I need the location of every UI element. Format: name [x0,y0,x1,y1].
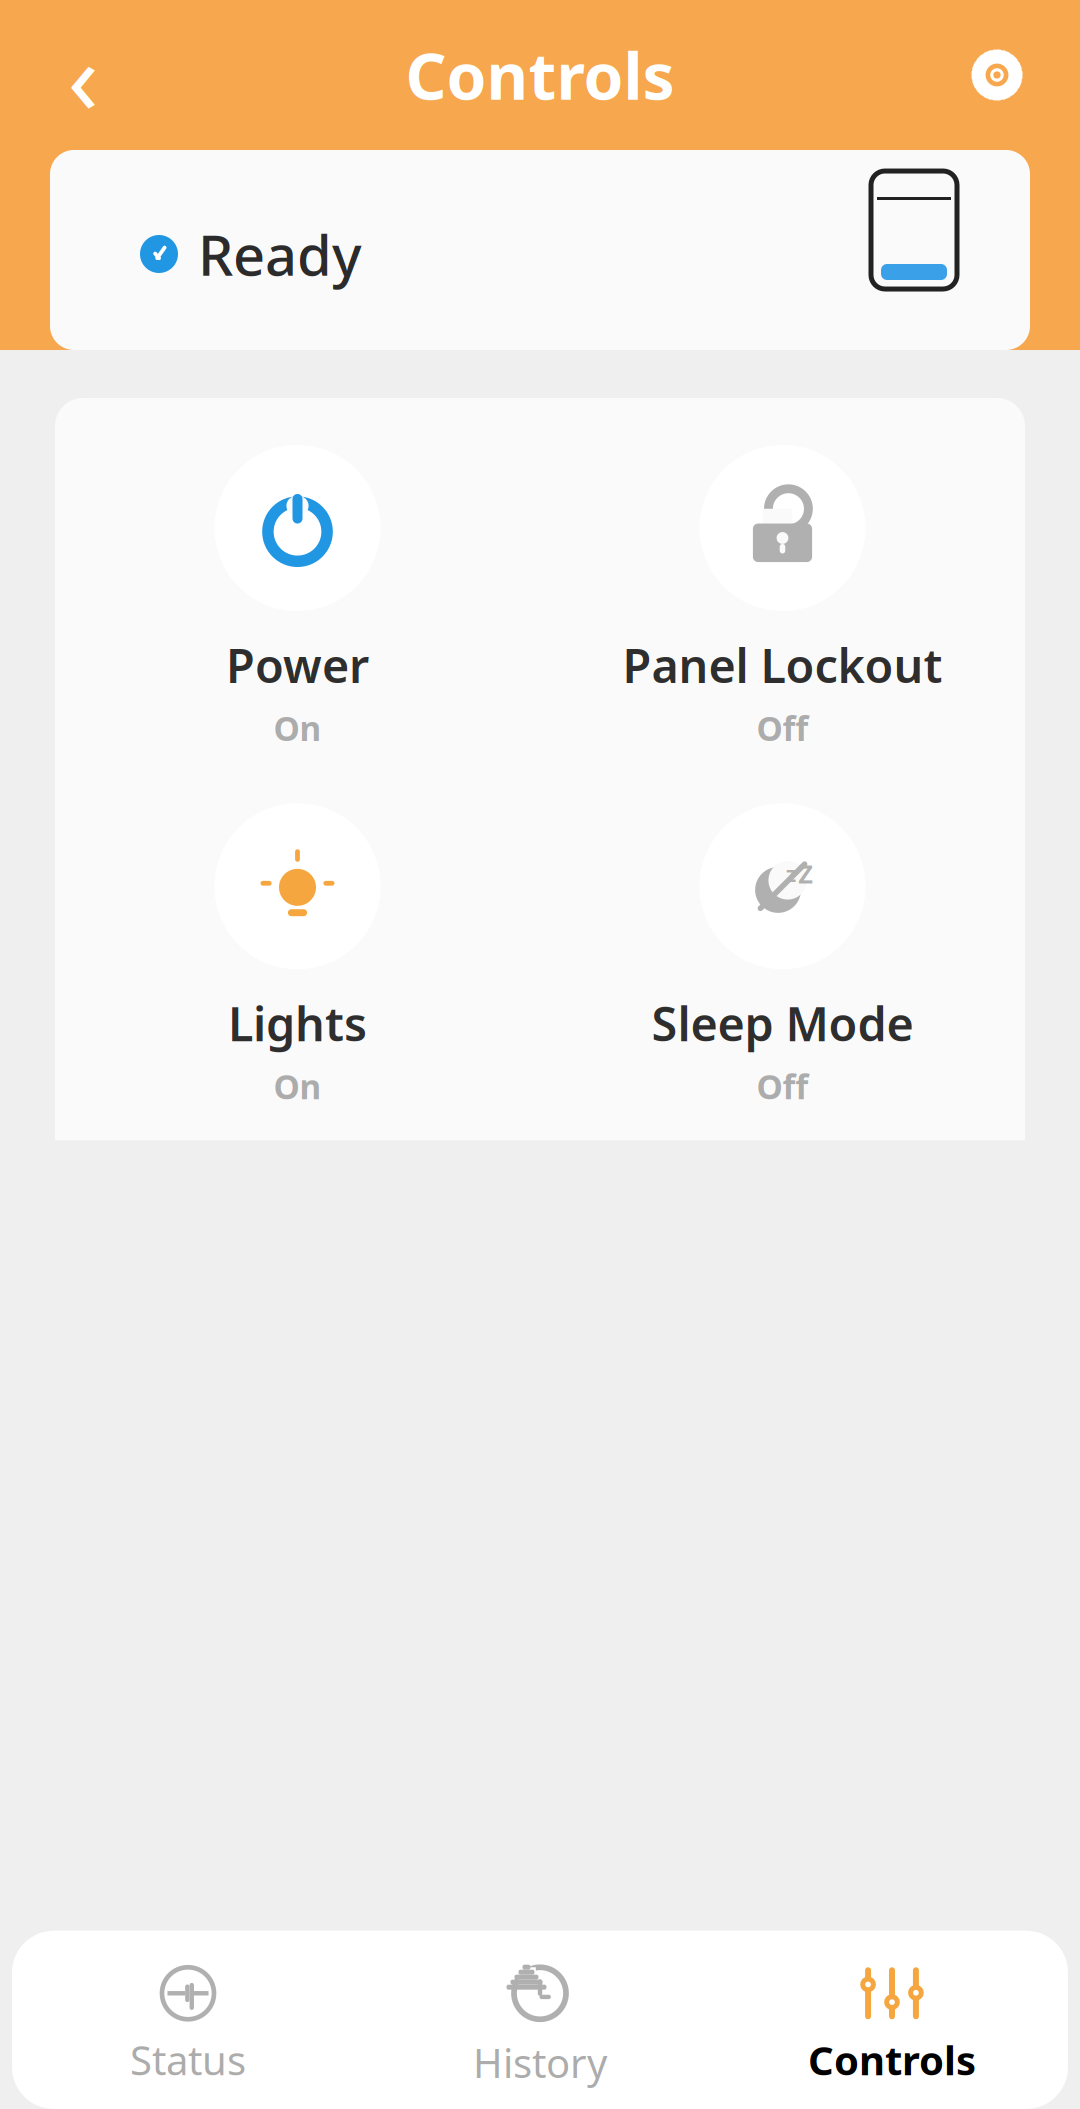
button[interactable]: Back [38,30,128,120]
button[interactable]: Power [55,438,540,750]
staticText: ‹ [67,8,98,142]
staticText: Power [226,634,369,696]
button[interactable]: Controls [716,1967,1068,2086]
staticText: On [273,706,321,750]
staticText: Panel Lockout [622,634,942,696]
button[interactable]: z [540,796,1025,1108]
staticText: On [273,1064,321,1108]
staticText: z [786,859,797,888]
staticText: Controls [405,32,674,117]
staticText: Off [756,706,808,750]
button[interactable]: Status [12,1967,364,2086]
staticText: Lights [228,992,367,1054]
staticText: Off [756,1064,808,1108]
staticText: Sleep Mode [651,992,913,1054]
button[interactable]: Lights [55,796,540,1108]
button[interactable]: Settings [952,30,1042,120]
button[interactable]: History [364,1965,716,2089]
button[interactable]: Panel Lockout [540,438,1025,750]
staticText: Controls [808,2033,976,2086]
staticText: History [473,2036,607,2089]
staticText: Z [798,857,813,890]
staticText: Status [130,2033,246,2086]
staticText: Ready [198,217,362,291]
